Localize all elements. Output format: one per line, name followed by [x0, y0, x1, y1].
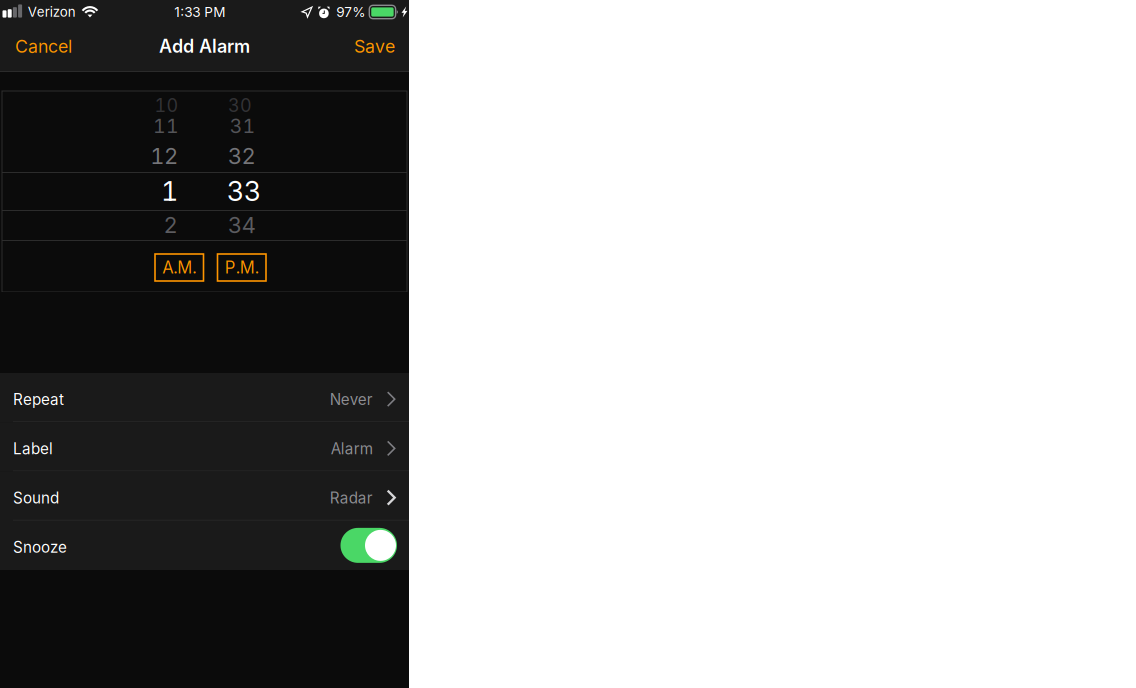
button[interactable]: Label — [0, 422, 409, 471]
staticText: 31 — [229, 114, 255, 138]
staticText: Radar — [330, 489, 373, 507]
staticText: 34 — [227, 212, 255, 238]
staticText: Save — [354, 35, 395, 57]
button[interactable]: Sound — [0, 471, 409, 521]
staticText: 10 — [154, 95, 178, 116]
button[interactable]: P.M. — [217, 254, 266, 281]
staticText: 1 — [161, 175, 178, 207]
staticText: Never — [330, 390, 373, 409]
staticText: Add Alarm — [159, 35, 250, 57]
staticText: P.M. — [225, 257, 259, 278]
staticText: Label — [13, 439, 53, 458]
button[interactable]: Snooze — [0, 521, 409, 570]
staticText: A.M. — [162, 257, 196, 278]
staticText: 11 — [153, 114, 179, 138]
staticText: 1:33 PM — [174, 4, 225, 20]
staticText: Verizon — [28, 4, 76, 20]
button[interactable]: Repeat — [0, 373, 409, 422]
staticText: Cancel — [15, 35, 72, 57]
button[interactable]: A.M. — [155, 254, 203, 281]
staticText: 97% — [336, 4, 365, 20]
staticText: 32 — [227, 143, 255, 169]
staticText: 2 — [163, 212, 177, 238]
staticText: Snooze — [13, 538, 67, 556]
staticText: Alarm — [331, 439, 373, 458]
staticText: Repeat — [13, 390, 64, 409]
staticText: 12 — [150, 143, 178, 169]
staticText: Sound — [13, 489, 59, 507]
button[interactable]: Cancel — [0, 24, 82, 70]
staticText: 33 — [226, 175, 260, 207]
staticText: 30 — [228, 95, 252, 116]
button[interactable]: Save — [344, 24, 409, 70]
